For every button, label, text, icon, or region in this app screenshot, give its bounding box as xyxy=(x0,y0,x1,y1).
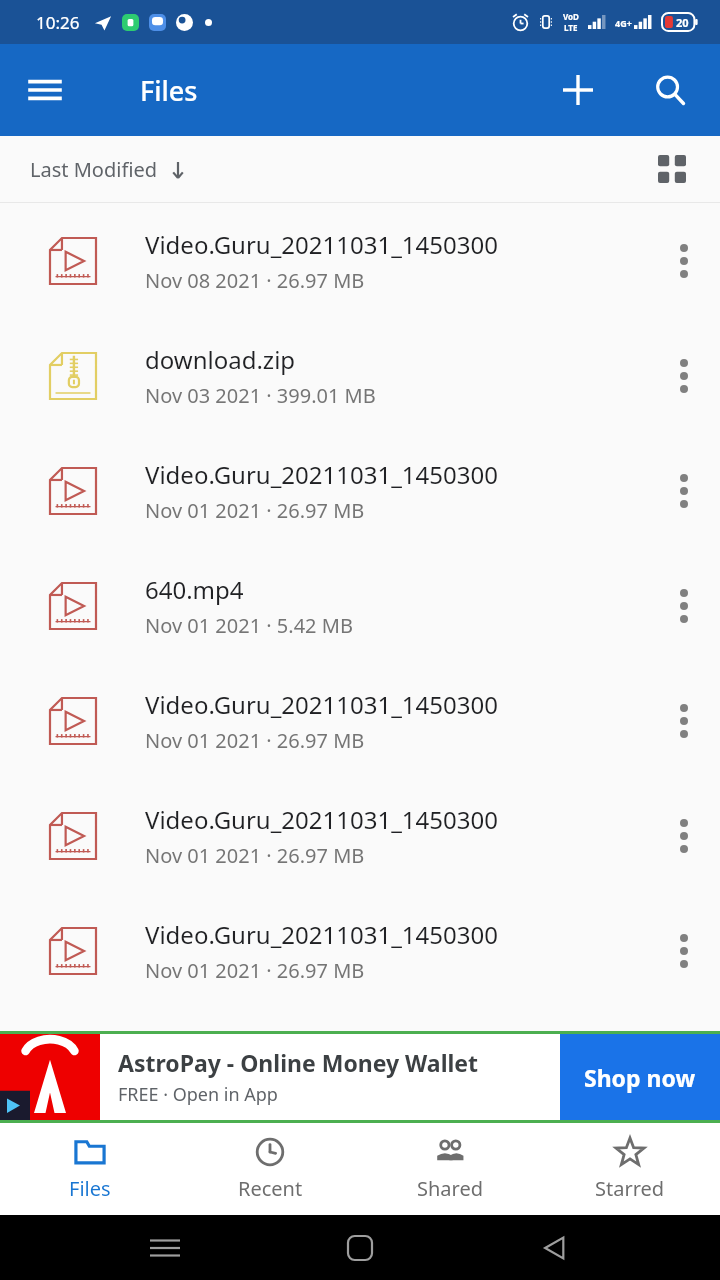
staticText: LTE xyxy=(564,22,578,33)
staticText: 10:26 xyxy=(36,11,80,34)
staticText: Files xyxy=(140,72,198,109)
button[interactable]: Last Modified xyxy=(22,150,196,189)
button[interactable]: AstroPay - Online Money Wallet xyxy=(0,1034,720,1120)
staticText: 640.mp4 xyxy=(145,573,244,606)
button[interactable]: Starred xyxy=(540,1123,720,1215)
button[interactable]: Add xyxy=(550,62,606,118)
staticText: Video.Guru_20211031_1450300 xyxy=(145,458,498,491)
button[interactable]: Shared xyxy=(360,1123,540,1215)
staticText: 20 xyxy=(676,15,689,30)
button[interactable]: Video.Guru_20211031_1450300 xyxy=(0,433,720,548)
staticText: Nov 01 2021 · 26.97 MB xyxy=(145,497,365,524)
staticText: Shared xyxy=(417,1175,483,1202)
button[interactable]: Video.Guru_20211031_1450300 xyxy=(0,893,720,1008)
button[interactable]: Video.Guru_20211031_1450300 xyxy=(0,778,720,893)
staticText: VoD xyxy=(563,11,579,22)
button[interactable]: More options for Video.Guru_20211031_145… xyxy=(648,778,720,893)
staticText: Video.Guru_20211031_1450300 xyxy=(145,688,498,721)
staticText: Shop now xyxy=(584,1062,696,1093)
staticText: Video.Guru_20211031_1450300 xyxy=(145,803,498,836)
button[interactable]: Video.Guru_20211031_1450300 xyxy=(0,203,720,318)
staticText: Files xyxy=(69,1175,111,1202)
button[interactable]: Video.Guru_20211031_1450300 xyxy=(0,663,720,778)
button[interactable]: More options for Video.Guru_20211031_145… xyxy=(648,663,720,778)
button[interactable]: Files xyxy=(0,1123,180,1215)
button[interactable]: download.zip xyxy=(0,318,720,433)
staticText: Nov 01 2021 · 5.42 MB xyxy=(145,612,353,639)
staticText: FREE · Open in App xyxy=(118,1082,278,1107)
button[interactable]: More options for Video.Guru_20211031_145… xyxy=(648,203,720,318)
button[interactable]: Recent apps xyxy=(135,1218,195,1278)
staticText: Nov 01 2021 · 26.97 MB xyxy=(145,727,365,754)
button[interactable]: Switch to grid view xyxy=(646,143,698,195)
button[interactable]: More options for 640.mp4 xyxy=(648,548,720,663)
staticText: Nov 01 2021 · 26.97 MB xyxy=(145,842,365,869)
button[interactable]: More options for Video.Guru_20211031_145… xyxy=(648,433,720,548)
button[interactable]: Search xyxy=(642,62,698,118)
button[interactable]: Home xyxy=(330,1218,390,1278)
staticText: Nov 08 2021 · 26.97 MB xyxy=(145,267,365,294)
button[interactable]: 640.mp4 xyxy=(0,548,720,663)
staticText: Last Modified xyxy=(30,156,158,183)
button[interactable]: More options for download.zip xyxy=(648,318,720,433)
staticText: Recent xyxy=(238,1175,303,1202)
staticText: download.zip xyxy=(145,343,296,376)
staticText: Nov 01 2021 · 26.97 MB xyxy=(145,957,365,984)
staticText: Starred xyxy=(595,1175,665,1202)
button[interactable]: Recent xyxy=(180,1123,360,1215)
button[interactable]: Back xyxy=(525,1218,585,1278)
staticText: Video.Guru_20211031_1450300 xyxy=(145,918,498,951)
button[interactable]: More options for Video.Guru_20211031_145… xyxy=(648,893,720,1008)
staticText: Nov 03 2021 · 399.01 MB xyxy=(145,382,376,409)
staticText: AstroPay - Online Money Wallet xyxy=(118,1047,479,1078)
staticText: 4G+ xyxy=(615,17,632,29)
button[interactable]: Open navigation menu xyxy=(18,63,72,117)
staticText: Video.Guru_20211031_1450300 xyxy=(145,228,498,261)
button[interactable]: Shop now xyxy=(560,1034,720,1120)
